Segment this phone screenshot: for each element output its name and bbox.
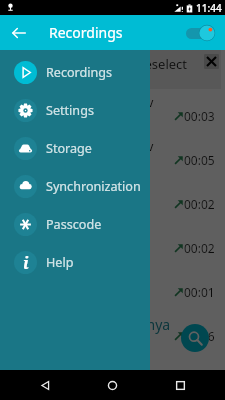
- staticText: Kenya: [130, 315, 171, 334]
- button[interactable]: Close selection: [204, 54, 219, 69]
- staticText: Help: [46, 254, 74, 271]
- staticText: 00:05: [184, 152, 215, 168]
- button[interactable]: Settings: [0, 91, 150, 129]
- button[interactable]: Back: [23, 370, 68, 400]
- button[interactable]: Passcode: [0, 205, 150, 243]
- button[interactable]: Back: [6, 15, 32, 50]
- button[interactable]: Recordings: [0, 53, 150, 91]
- button[interactable]: i: [0, 243, 150, 281]
- staticText: 00:02: [184, 240, 215, 256]
- staticText: 00:06: [184, 328, 215, 344]
- staticText: Recording 0002.wav: [40, 138, 154, 154]
- button[interactable]: Recording 0002.wav: [0, 133, 225, 177]
- staticText: Settings: [46, 102, 94, 119]
- button[interactable]: Synchronization: [0, 167, 150, 205]
- staticText: 00:02: [184, 196, 215, 212]
- staticText: Recordings: [46, 64, 113, 81]
- staticText: 11:44: [196, 1, 222, 15]
- staticText: 00:01: [184, 284, 215, 300]
- button[interactable]: Recording 0004.wav: [0, 221, 225, 265]
- button[interactable]: Search: [181, 324, 209, 352]
- staticText: Recording 0001.wav: [40, 94, 154, 110]
- button[interactable]: Home: [90, 370, 135, 400]
- staticText: Passcode: [46, 216, 102, 233]
- button[interactable]: Recents: [158, 370, 203, 400]
- staticText: Synchronization: [46, 178, 141, 195]
- button[interactable]: Recording 0005.wav: [0, 265, 225, 309]
- button[interactable]: Record toggle: [186, 22, 216, 44]
- staticText: 00:03: [184, 108, 215, 124]
- staticText: Deselect: [135, 55, 188, 73]
- staticText: Recording 0003.wav: [26, 182, 140, 198]
- staticText: Recordings: [49, 23, 123, 42]
- staticText: i: [23, 252, 29, 274]
- button[interactable]: Recording 0003.wav: [0, 177, 225, 221]
- button[interactable]: Recording 0001.wav: [0, 89, 225, 133]
- staticText: Storage: [46, 140, 92, 157]
- staticText: Recording 0004.wav: [26, 226, 140, 242]
- button[interactable]: Recording 0006.wav: [0, 309, 225, 353]
- button[interactable]: Storage: [0, 129, 150, 167]
